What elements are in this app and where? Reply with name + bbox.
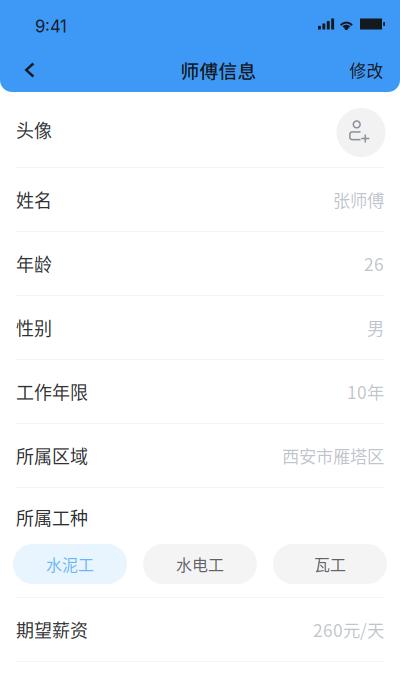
button[interactable]: Back bbox=[5, 48, 54, 92]
staticText: 男 bbox=[367, 315, 384, 340]
staticText: 期望薪资 bbox=[16, 616, 88, 643]
staticText: 张师傅 bbox=[333, 187, 384, 212]
button[interactable]: 瓦工 bbox=[273, 544, 387, 584]
staticText: 水电工 bbox=[176, 552, 224, 576]
staticText: 年龄 bbox=[16, 250, 52, 277]
staticText: 头像 bbox=[16, 116, 52, 143]
staticText: 师傅信息 bbox=[180, 56, 256, 83]
staticText: 10年 bbox=[347, 379, 384, 404]
staticText: 西安市雁塔区 bbox=[282, 443, 384, 468]
button[interactable]: 水电工 bbox=[143, 544, 257, 584]
button[interactable]: 头像 bbox=[0, 92, 400, 167]
button[interactable]: 性别 bbox=[0, 296, 400, 359]
staticText: 9:41 bbox=[35, 16, 67, 37]
staticText: 修改 bbox=[349, 58, 383, 82]
staticText: 260元/天 bbox=[313, 617, 384, 642]
staticText: 水泥工 bbox=[46, 552, 94, 576]
staticText: 所属区域 bbox=[16, 442, 88, 469]
button[interactable]: 期望薪资 bbox=[0, 598, 400, 661]
button[interactable]: 水泥工 bbox=[13, 544, 127, 584]
button[interactable]: 修改 bbox=[342, 48, 391, 92]
staticText: 工作年限 bbox=[16, 378, 88, 405]
button[interactable]: 工作年限 bbox=[0, 360, 400, 423]
staticText: 26 bbox=[364, 251, 384, 276]
staticText: 瓦工 bbox=[314, 552, 346, 576]
staticText: 姓名 bbox=[16, 186, 52, 213]
button[interactable]: 所属区域 bbox=[0, 424, 400, 487]
button[interactable]: 姓名 bbox=[0, 168, 400, 231]
staticText: 性别 bbox=[16, 314, 52, 341]
staticText: 所属工种 bbox=[16, 504, 88, 530]
button[interactable]: 年龄 bbox=[0, 232, 400, 295]
